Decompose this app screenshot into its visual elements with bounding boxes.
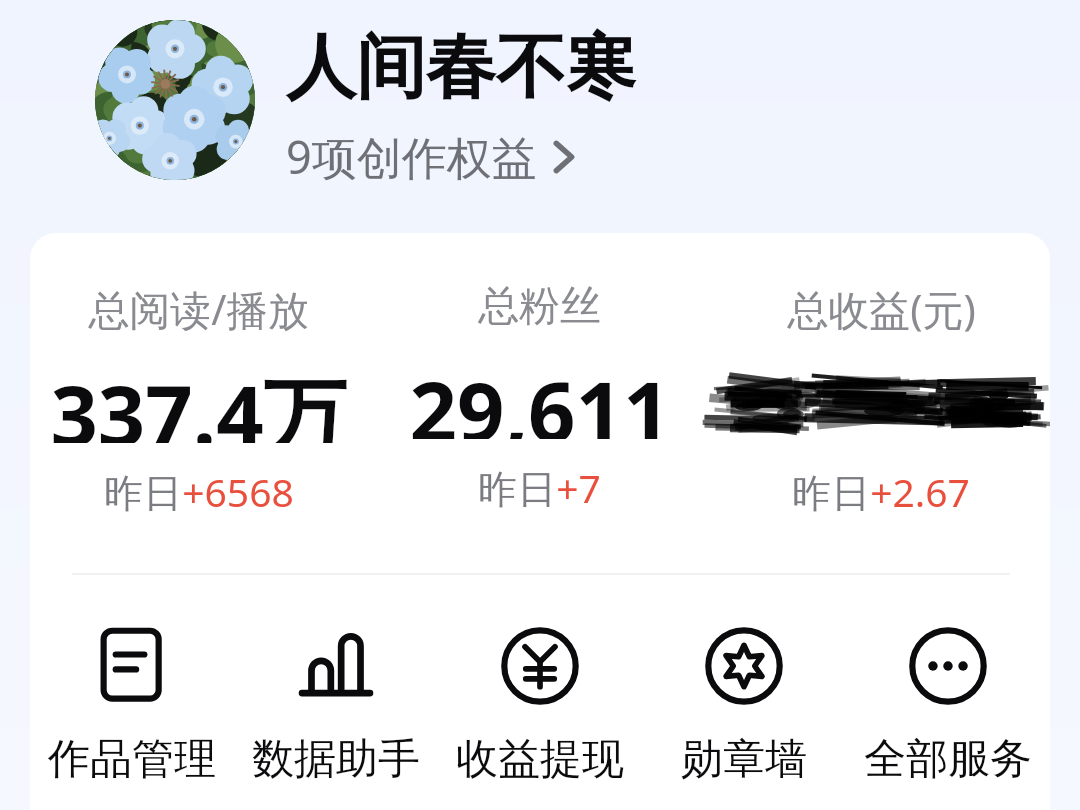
staticText: 数据助手 [252, 733, 420, 786]
staticText: 人间春不寒 [286, 24, 636, 112]
staticText: 29,611 [409, 353, 671, 439]
button[interactable]: All services [846, 623, 1050, 786]
staticText: 总粉丝 [478, 281, 601, 333]
staticText: 总收益(元) [787, 281, 976, 337]
staticText: 全部服务 [864, 733, 1032, 786]
staticText: 昨日+6568 [104, 465, 294, 518]
button[interactable]: 总粉丝 [367, 281, 712, 514]
staticText: 昨日+2.67 [792, 465, 970, 518]
staticText: 337.4万 [50, 357, 347, 443]
button[interactable]: 总阅读/播放 [30, 281, 367, 518]
button[interactable]: Data assistant [234, 623, 438, 786]
staticText: 作品管理 [48, 733, 216, 786]
button[interactable]: Withdraw earnings [438, 623, 642, 786]
button[interactable]: Profile avatar [95, 20, 255, 180]
staticText: 收益提现 [456, 733, 624, 786]
staticText: 勋章墙 [681, 733, 807, 786]
button[interactable]: Medal wall [642, 623, 846, 786]
staticText: 9项创作权益 [286, 126, 537, 187]
staticText: 总阅读/播放 [88, 281, 309, 337]
button[interactable]: 总收益(元) [712, 281, 1050, 518]
button[interactable]: Work management [30, 623, 234, 786]
staticText: 昨日+7 [478, 461, 601, 514]
button[interactable]: 9项创作权益 [286, 126, 575, 187]
